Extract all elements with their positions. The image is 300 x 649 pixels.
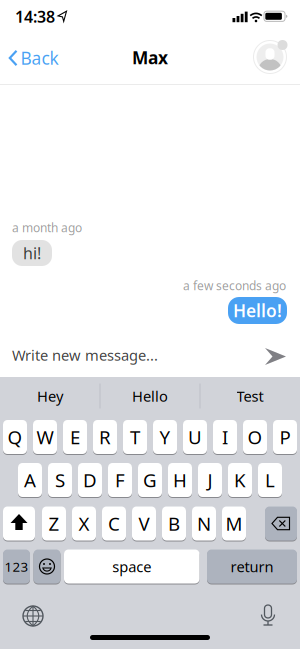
button[interactable]: Z — [42, 506, 66, 541]
staticText: a month ago — [12, 219, 82, 235]
button[interactable]: 123 — [3, 549, 30, 584]
button[interactable]: Q — [3, 419, 27, 454]
staticText: L — [265, 468, 275, 492]
staticText: D — [83, 468, 97, 492]
button[interactable]: space — [64, 549, 199, 584]
button[interactable]: C — [102, 506, 126, 541]
button[interactable]: K — [228, 462, 252, 497]
staticText: T — [130, 425, 140, 449]
button[interactable]: E — [63, 419, 87, 454]
staticText: W — [36, 425, 53, 449]
button[interactable]: M — [222, 506, 246, 541]
button[interactable]: I — [213, 419, 237, 454]
staticText: K — [234, 468, 246, 492]
button[interactable]: Profile — [252, 39, 288, 75]
button[interactable]: Y — [153, 419, 177, 454]
staticText: return — [230, 557, 273, 576]
button[interactable]: Write new message — [12, 338, 288, 372]
staticText: J — [207, 468, 212, 492]
staticText: N — [197, 511, 211, 536]
staticText: Hello — [132, 386, 168, 406]
staticText: I — [222, 425, 228, 449]
staticText: G — [143, 468, 157, 492]
staticText: Z — [48, 511, 59, 536]
staticText: M — [225, 511, 242, 536]
button[interactable]: Test — [200, 381, 299, 411]
button[interactable]: A — [18, 462, 42, 497]
button[interactable]: Emoji — [33, 549, 60, 584]
button[interactable]: V — [132, 506, 156, 541]
staticText: Y — [159, 425, 170, 449]
button[interactable]: Hey — [0, 381, 99, 411]
button[interactable]: Send — [265, 348, 286, 365]
staticText: P — [279, 425, 290, 449]
button[interactable]: R — [93, 419, 117, 454]
staticText: A — [24, 468, 36, 492]
staticText: Write new message... — [12, 345, 158, 365]
staticText: H — [173, 468, 187, 492]
button[interactable]: D — [78, 462, 102, 497]
button[interactable]: N — [192, 506, 216, 541]
staticText: B — [168, 511, 180, 536]
staticText: Test — [236, 386, 263, 406]
staticText: Hey — [37, 386, 63, 406]
button[interactable]: L — [258, 462, 282, 497]
button[interactable]: T — [123, 419, 147, 454]
staticText: X — [78, 511, 89, 536]
staticText: Max — [132, 46, 168, 69]
staticText: S — [55, 468, 65, 492]
button[interactable]: Shift — [3, 506, 35, 541]
staticText: a few seconds ago — [183, 277, 286, 293]
button[interactable]: U — [183, 419, 207, 454]
button[interactable]: W — [33, 419, 57, 454]
staticText: V — [138, 511, 149, 536]
button[interactable]: Hello — [100, 381, 199, 411]
button[interactable]: Dictate — [259, 602, 277, 628]
button[interactable]: J — [198, 462, 222, 497]
staticText: 123 — [4, 558, 28, 575]
button[interactable]: P — [273, 419, 297, 454]
button[interactable]: X — [72, 506, 96, 541]
staticText: hi! — [23, 242, 41, 264]
staticText: Back — [20, 46, 58, 69]
button[interactable]: S — [48, 462, 72, 497]
staticText: Q — [7, 425, 22, 449]
staticText: O — [247, 425, 262, 449]
staticText: U — [188, 425, 202, 449]
staticText: F — [115, 468, 125, 492]
button[interactable]: Delete — [265, 506, 297, 541]
button[interactable]: H — [168, 462, 192, 497]
button[interactable]: return — [207, 549, 297, 584]
button[interactable]: O — [243, 419, 267, 454]
button[interactable]: Next keyboard — [20, 603, 46, 629]
button[interactable]: Back — [3, 43, 65, 73]
staticText: Hello! — [233, 299, 282, 322]
button[interactable]: B — [162, 506, 186, 541]
staticText: C — [108, 511, 120, 536]
button[interactable]: F — [108, 462, 132, 497]
staticText: R — [99, 425, 111, 449]
staticText: E — [70, 425, 80, 449]
staticText: 14:38 — [15, 6, 55, 27]
staticText: space — [112, 557, 151, 576]
button[interactable]: G — [138, 462, 162, 497]
